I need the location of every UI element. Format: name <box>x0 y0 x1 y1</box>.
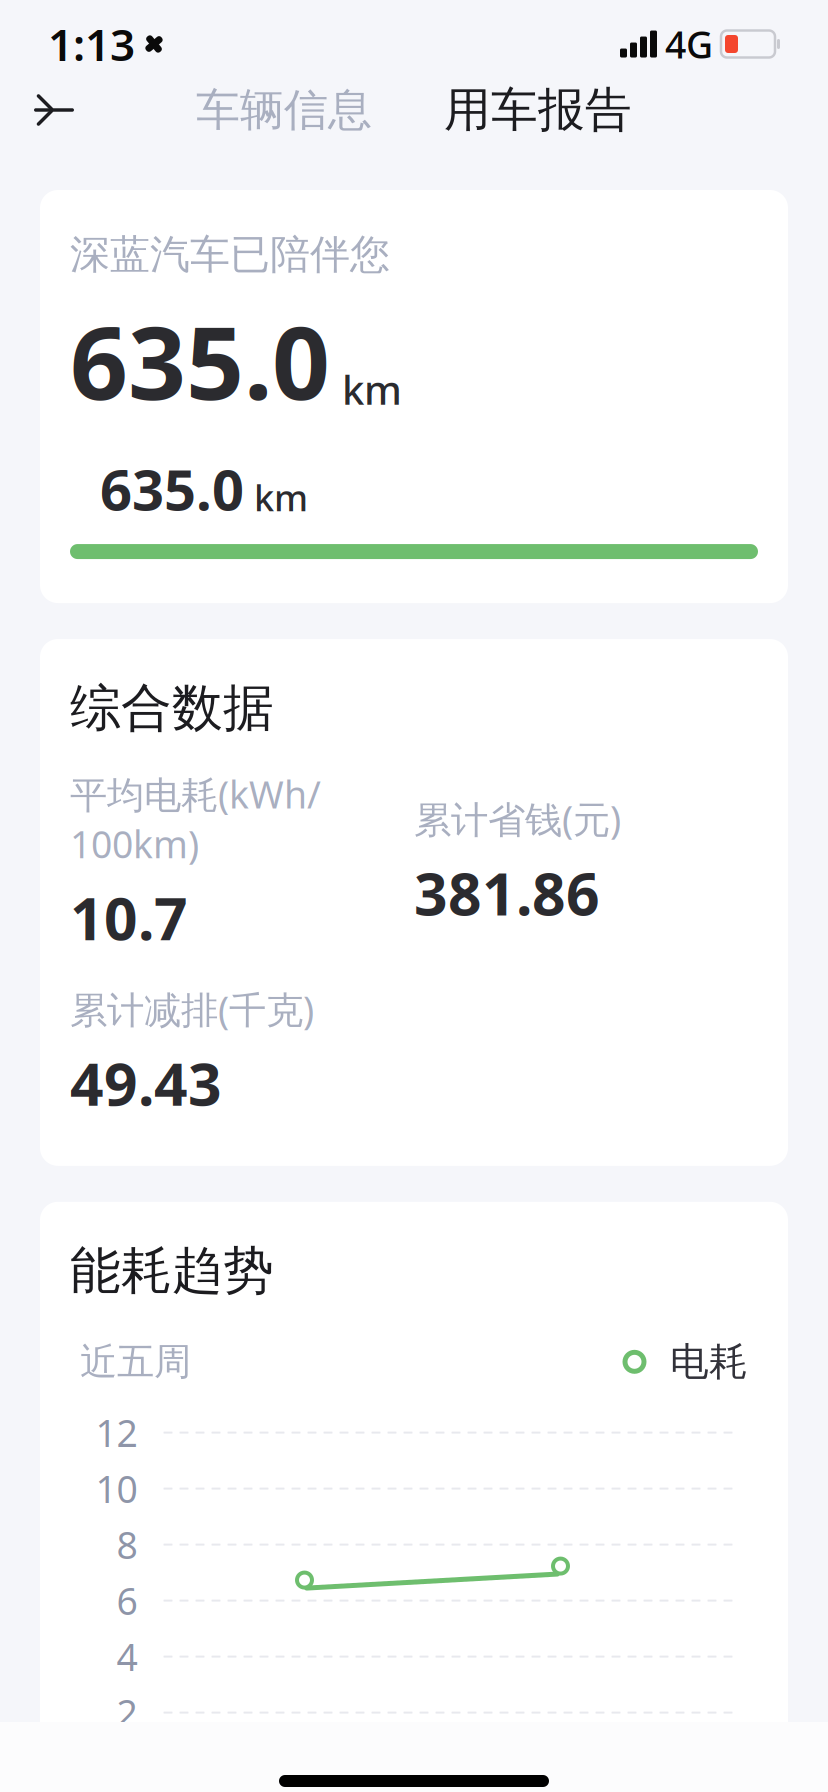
staticText: km <box>342 363 402 416</box>
staticText: 10.7 <box>70 878 188 956</box>
staticText: 4G <box>665 19 713 69</box>
staticText: 381.86 <box>414 854 600 932</box>
staticText: 车辆信息 <box>196 83 372 137</box>
staticText: km <box>254 473 308 521</box>
button[interactable]: Back <box>18 74 90 146</box>
staticText: 累计减排(千克) <box>70 984 314 1034</box>
staticText: 能耗趋势 <box>70 1240 274 1302</box>
staticText: 4 <box>116 1632 137 1681</box>
staticText: 综合数据 <box>70 677 274 739</box>
button[interactable]: 用车报告 <box>444 71 632 149</box>
staticText: 2 <box>116 1688 137 1737</box>
staticText: 49.43 <box>70 1044 222 1122</box>
staticText: 635.0 <box>70 293 330 428</box>
staticText: 近五周 <box>80 1339 191 1385</box>
staticText: 1:13 <box>48 15 135 73</box>
staticText: 10.20 <box>536 1782 625 1792</box>
staticText: 深蓝汽车已陪伴您 <box>70 230 390 279</box>
button[interactable]: 车辆信息 <box>196 73 372 147</box>
staticText: 635.0 <box>100 452 244 526</box>
staticText: 电耗 <box>670 1338 748 1386</box>
staticText: 累计省钱(元) <box>414 794 621 844</box>
staticText: 10.13 <box>241 1782 330 1792</box>
staticText: 平均电耗(kWh/100km) <box>70 769 321 868</box>
staticText: 8 <box>116 1520 137 1569</box>
staticText: 6 <box>116 1576 137 1625</box>
staticText: 12 <box>95 1408 137 1457</box>
staticText: 用车报告 <box>444 81 632 139</box>
staticText: 10 <box>95 1464 137 1513</box>
